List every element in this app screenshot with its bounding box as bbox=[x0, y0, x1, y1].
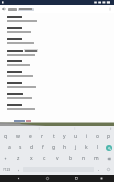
button[interactable]: u bbox=[70, 131, 81, 142]
button[interactable]: q bbox=[0, 131, 12, 142]
button[interactable]: , bbox=[14, 164, 23, 175]
button[interactable] bbox=[0, 69, 114, 80]
button[interactable]: d bbox=[26, 142, 37, 153]
button[interactable]: . bbox=[94, 164, 103, 175]
button[interactable]: r bbox=[36, 131, 48, 142]
button[interactable]: k bbox=[81, 142, 92, 153]
button[interactable]: w bbox=[12, 131, 24, 142]
button[interactable]: More options bbox=[106, 5, 114, 13]
button[interactable]: Menu bbox=[98, 175, 105, 182]
staticText: m bbox=[94, 155, 99, 162]
button[interactable]: t bbox=[48, 131, 59, 142]
button[interactable]: g bbox=[48, 142, 59, 153]
button[interactable]: s bbox=[15, 142, 26, 153]
button[interactable] bbox=[0, 14, 114, 25]
staticText: p bbox=[107, 133, 111, 140]
staticText: j bbox=[75, 144, 77, 151]
staticText: o bbox=[96, 133, 100, 140]
staticText: s bbox=[19, 144, 22, 151]
button[interactable]: Emoji bbox=[103, 164, 114, 175]
button[interactable]: Home bbox=[44, 175, 51, 182]
button[interactable]: Recents bbox=[73, 175, 80, 182]
button[interactable]: h bbox=[59, 142, 70, 153]
staticText: l bbox=[97, 144, 99, 151]
staticText: x bbox=[30, 155, 33, 162]
button[interactable]: b bbox=[64, 153, 77, 164]
button[interactable]: e bbox=[24, 131, 36, 142]
staticText: h bbox=[63, 144, 67, 151]
button[interactable] bbox=[0, 58, 114, 69]
staticText: y bbox=[63, 133, 66, 140]
staticText: r bbox=[41, 133, 44, 140]
button[interactable]: ?123 bbox=[0, 164, 14, 175]
staticText: d bbox=[30, 144, 34, 151]
staticText: z bbox=[17, 155, 20, 162]
staticText: c bbox=[43, 155, 46, 162]
button[interactable] bbox=[0, 102, 114, 113]
staticText: ?123 bbox=[3, 167, 11, 172]
staticText: t bbox=[53, 133, 55, 140]
button[interactable]: Shift bbox=[0, 153, 11, 164]
button[interactable] bbox=[0, 91, 114, 102]
button[interactable]: y bbox=[59, 131, 70, 142]
button[interactable]: Search bbox=[103, 142, 114, 153]
button[interactable]: c bbox=[38, 153, 51, 164]
button[interactable] bbox=[0, 36, 114, 47]
button[interactable]: v bbox=[51, 153, 64, 164]
button[interactable]: a bbox=[3, 142, 15, 153]
staticText: q bbox=[4, 133, 8, 140]
button[interactable]: f bbox=[37, 142, 48, 153]
staticText: w bbox=[16, 133, 20, 140]
button[interactable]: l bbox=[92, 142, 103, 153]
staticText: b bbox=[69, 155, 73, 162]
button[interactable]: i bbox=[81, 131, 92, 142]
staticText: e bbox=[29, 133, 32, 140]
button[interactable]: n bbox=[77, 153, 90, 164]
button[interactable] bbox=[0, 80, 114, 91]
button[interactable]: x bbox=[25, 153, 38, 164]
button[interactable]: p bbox=[103, 131, 114, 142]
button[interactable]: Back bbox=[15, 175, 22, 182]
staticText: k bbox=[85, 144, 88, 151]
button[interactable]: o bbox=[92, 131, 103, 142]
button[interactable] bbox=[0, 25, 114, 36]
button[interactable]: z bbox=[11, 153, 25, 164]
staticText: a bbox=[8, 144, 11, 151]
button[interactable] bbox=[0, 47, 114, 58]
staticText: g bbox=[52, 144, 56, 151]
button[interactable]: j bbox=[70, 142, 81, 153]
staticText: . bbox=[98, 166, 100, 173]
button[interactable]: m bbox=[90, 153, 103, 164]
button[interactable]: Back bbox=[0, 5, 8, 13]
staticText: , bbox=[18, 166, 20, 173]
button[interactable]: Backspace bbox=[103, 153, 114, 164]
staticText: v bbox=[56, 155, 59, 162]
button[interactable] bbox=[8, 5, 106, 13]
staticText: i bbox=[86, 133, 88, 140]
staticText: n bbox=[82, 155, 86, 162]
staticText: f bbox=[42, 144, 44, 151]
staticText: u bbox=[74, 133, 78, 140]
